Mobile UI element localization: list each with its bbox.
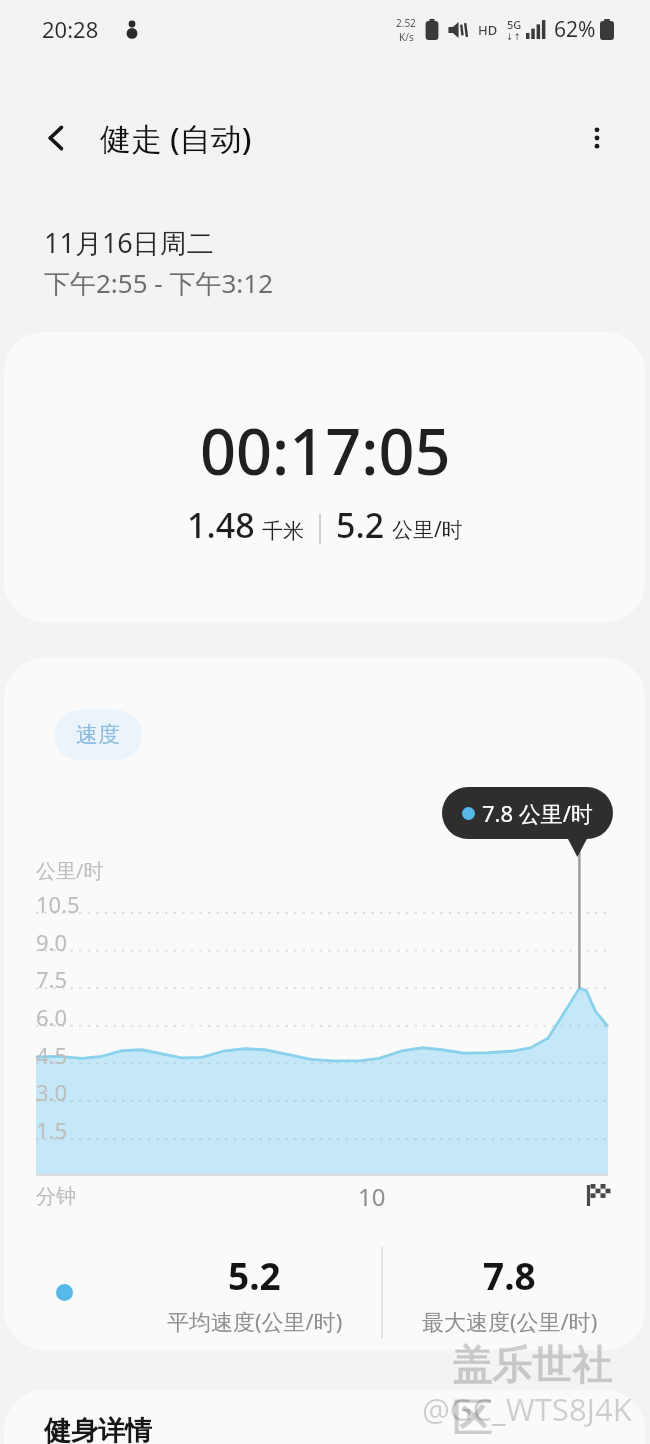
staticText: 9.0 bbox=[36, 927, 68, 957]
staticText: 健身详情 bbox=[44, 1414, 152, 1444]
staticText: 1.5 bbox=[36, 1115, 68, 1145]
staticText: 平均速度(公里/时) bbox=[167, 1306, 343, 1336]
staticText: 00:17:05 bbox=[200, 408, 451, 494]
staticText: 分钟 bbox=[36, 1184, 76, 1209]
staticText: 下午2:55 - 下午3:12 bbox=[44, 265, 274, 301]
staticText: 速度 bbox=[76, 721, 120, 749]
button[interactable]: More options bbox=[570, 111, 624, 165]
staticText: 最大速度(公里/时) bbox=[422, 1306, 598, 1336]
staticText: 3.0 bbox=[36, 1077, 68, 1107]
staticText: 健走 (自动) bbox=[100, 117, 252, 159]
staticText: 7.8 公里/时 bbox=[482, 798, 593, 828]
staticText: 6.0 bbox=[36, 1002, 68, 1032]
staticText: 7.5 bbox=[36, 964, 68, 994]
staticText: 20:28 bbox=[42, 14, 99, 44]
staticText: 10 bbox=[358, 1180, 386, 1213]
staticText: 盖乐世社区 bbox=[452, 1340, 650, 1444]
staticText: 62% bbox=[554, 15, 596, 44]
staticText: 5G bbox=[507, 17, 522, 32]
button[interactable]: 速度 bbox=[54, 710, 142, 760]
staticText: 7.8 bbox=[483, 1250, 536, 1300]
button[interactable] bbox=[4, 332, 645, 622]
staticText: 11月16日周二 bbox=[44, 224, 214, 261]
staticText: ↓↑ bbox=[506, 32, 522, 42]
staticText: 公里/时 bbox=[36, 857, 104, 884]
staticText: HD bbox=[478, 21, 498, 39]
staticText: 4.5 bbox=[36, 1040, 68, 1070]
staticText: 5.2 bbox=[228, 1250, 281, 1300]
staticText: 2.52 bbox=[396, 16, 416, 30]
button[interactable]: Back bbox=[30, 111, 84, 165]
staticText: K/s bbox=[399, 30, 414, 44]
other: Finish bbox=[586, 1182, 612, 1206]
staticText: 1.48 bbox=[187, 502, 255, 548]
staticText: 5.2 bbox=[336, 502, 385, 548]
staticText: 公里/时 bbox=[392, 515, 463, 544]
staticText: 千米 bbox=[262, 518, 304, 544]
staticText: @GC_WTS8J4K bbox=[422, 1388, 632, 1430]
staticText: 10.5 bbox=[36, 889, 80, 919]
